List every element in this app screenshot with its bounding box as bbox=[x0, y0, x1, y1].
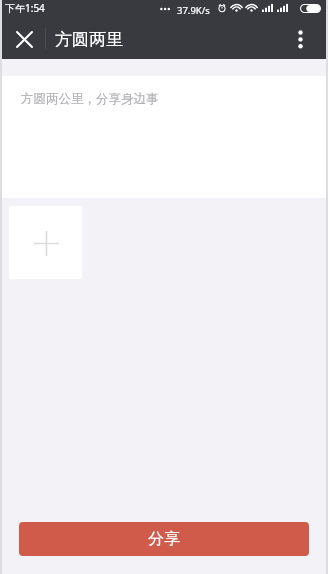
staticText: 37.9K/s bbox=[177, 4, 210, 17]
staticText: 方圆两公里，分享身边事 bbox=[21, 91, 159, 107]
staticText: 方圆两里 bbox=[55, 29, 123, 50]
button[interactable]: Add photo bbox=[9, 206, 82, 279]
button[interactable]: 分享 bbox=[19, 522, 309, 556]
button[interactable]: More options bbox=[276, 19, 324, 59]
button[interactable]: Close bbox=[0, 19, 48, 59]
staticText: 分享 bbox=[148, 529, 180, 549]
staticText: 下午1:54 bbox=[5, 1, 45, 15]
